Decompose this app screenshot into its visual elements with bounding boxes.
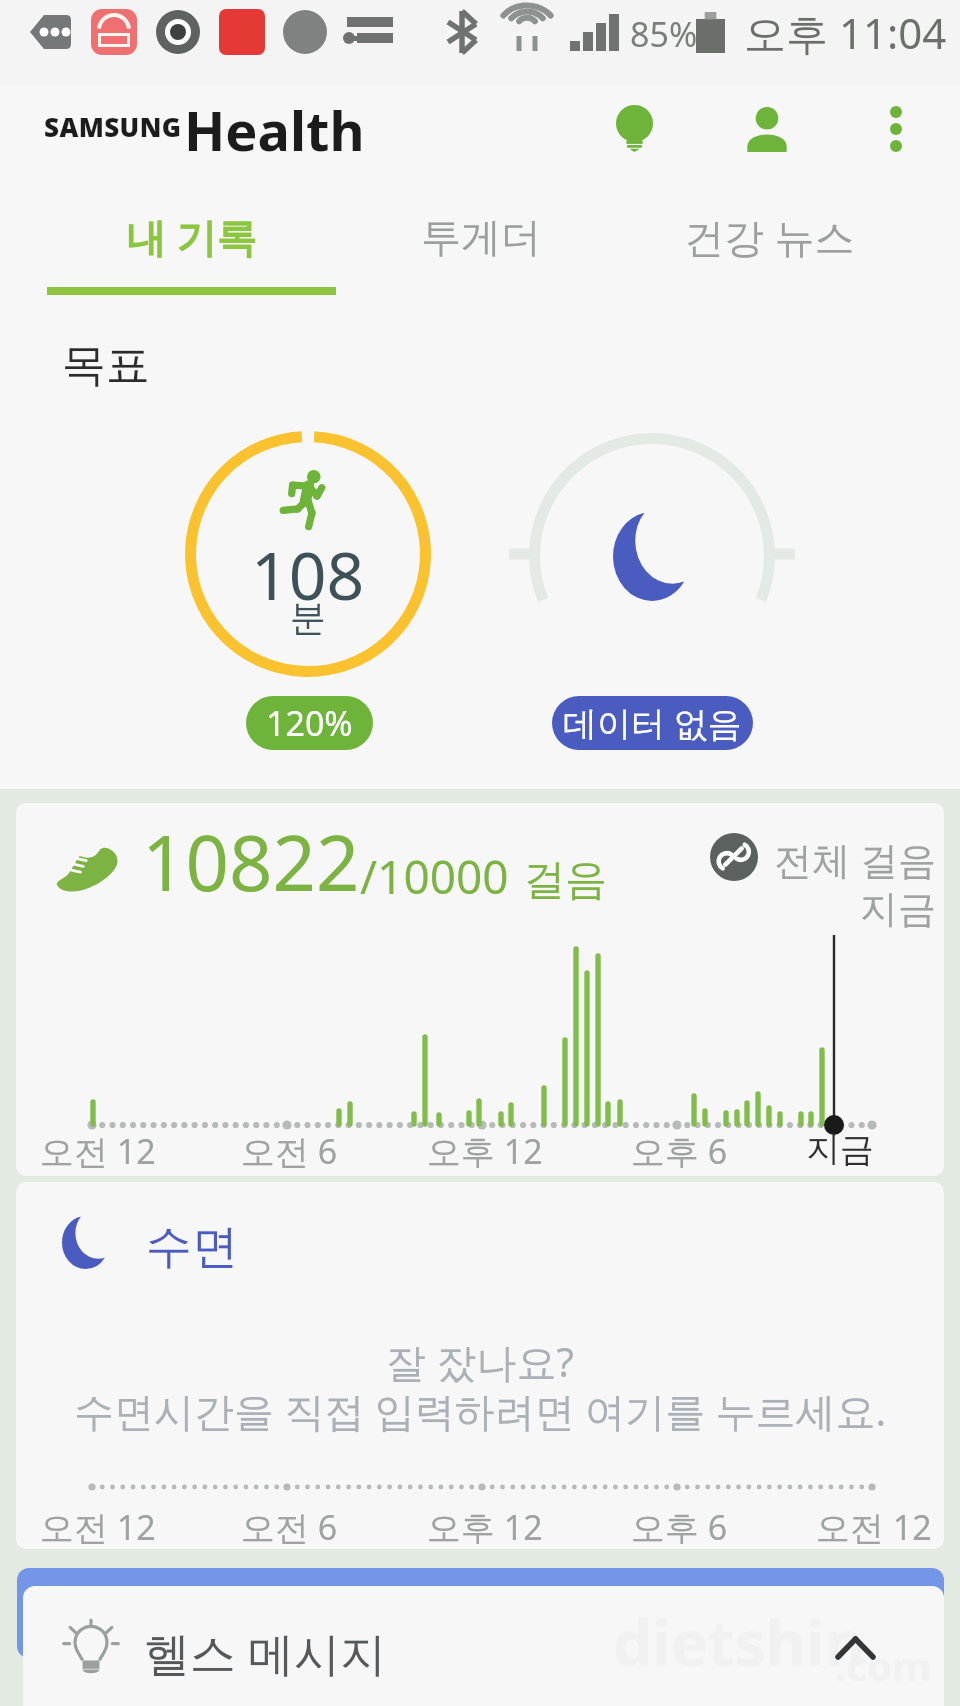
button[interactable]: 투게더 (336, 199, 625, 296)
button[interactable]: Profile (725, 87, 809, 171)
staticText: 오후 12 (427, 1128, 543, 1174)
button[interactable]: 120% (246, 696, 373, 750)
staticText: Health (184, 93, 365, 167)
button[interactable]: 수면 (16, 1182, 944, 1549)
staticText: 오후 11:04 (744, 4, 947, 61)
staticText: 수면시간을 직접 입력하려면 여기를 누르세요. (74, 1383, 887, 1438)
staticText: 108 (251, 529, 365, 619)
button[interactable]: 데이터 없음 (552, 696, 753, 750)
staticText: 헬스 메시지 (144, 1621, 386, 1684)
staticText: dietshin (613, 1600, 865, 1684)
staticText: 오전 6 (241, 1128, 338, 1174)
staticText: 목표 (62, 338, 150, 393)
staticText: 수면 (146, 1218, 238, 1276)
button[interactable]: 내 기록 (47, 199, 336, 296)
staticText: /10000 (360, 845, 509, 908)
staticText: 오전 12 (40, 1128, 156, 1174)
staticText: 85% (630, 11, 698, 57)
staticText: 분 (290, 595, 326, 640)
staticText: 데이터 없음 (563, 700, 742, 746)
staticText: 오후 12 (427, 1504, 543, 1549)
staticText: .com (835, 1638, 931, 1692)
button[interactable]: More options (854, 87, 938, 171)
button[interactable]: 10822 (16, 803, 944, 1176)
button[interactable]: Tips (592, 87, 676, 171)
button[interactable]: dietshin (23, 1586, 944, 1706)
staticText: 120% (266, 700, 353, 746)
staticText: 지금 (806, 1128, 874, 1171)
staticText: 오전 6 (241, 1504, 338, 1549)
staticText: 걸음 (523, 854, 607, 907)
staticText: 오전 12 (40, 1504, 156, 1549)
staticText: 지금 (860, 885, 936, 933)
button[interactable]: 건강 뉴스 (625, 199, 914, 296)
button[interactable]: Previous card (17, 1568, 944, 1658)
staticText: 오전 12 (816, 1504, 932, 1549)
staticText: 잘 잤나요? (386, 1334, 574, 1389)
staticText: 내 기록 (126, 209, 257, 264)
staticText: 전체 걸음 (774, 833, 936, 885)
staticText: 투게더 (421, 212, 541, 262)
staticText: 건강 뉴스 (684, 209, 855, 264)
staticText: 10822 (142, 810, 360, 914)
staticText: 오후 6 (631, 1504, 728, 1549)
staticText: SAMSUNG (44, 109, 182, 144)
staticText: 오후 6 (631, 1128, 728, 1174)
